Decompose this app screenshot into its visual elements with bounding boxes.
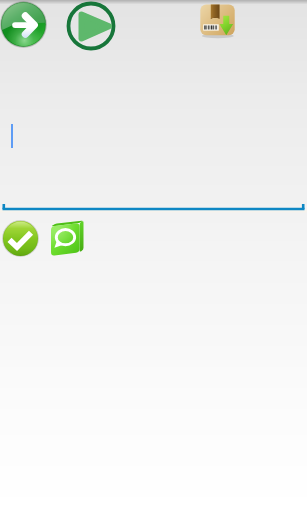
button[interactable]: Play bbox=[66, 1, 116, 51]
button[interactable]: Confirm bbox=[2, 220, 39, 257]
button[interactable]: Next bbox=[0, 1, 47, 48]
button[interactable]: Download package bbox=[198, 2, 237, 38]
button[interactable]: Messages bbox=[50, 219, 84, 256]
button[interactable]: Text input field bbox=[0, 120, 307, 211]
